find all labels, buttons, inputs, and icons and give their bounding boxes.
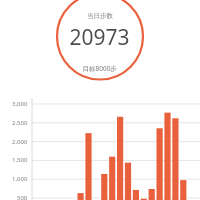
button[interactable]: Hourly step chart — [0, 0, 200, 200]
button[interactable]: Daily steps ring — [0, 0, 200, 200]
